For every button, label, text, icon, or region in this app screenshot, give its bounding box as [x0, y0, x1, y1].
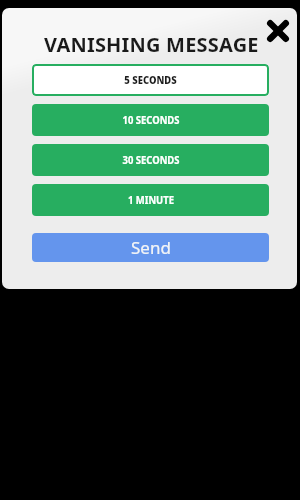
- staticText: VANISHING MESSAGE: [44, 31, 259, 58]
- staticText: 30 SECONDS: [122, 153, 180, 167]
- button[interactable]: 10 SECONDS: [32, 104, 269, 136]
- staticText: 10 SECONDS: [122, 113, 180, 127]
- staticText: 5 SECONDS: [124, 73, 177, 87]
- button[interactable]: Send: [32, 233, 269, 262]
- button[interactable]: Close: [262, 15, 294, 47]
- button[interactable]: 30 SECONDS: [32, 144, 269, 176]
- staticText: 1 MINUTE: [128, 193, 174, 207]
- staticText: Send: [131, 236, 171, 259]
- button[interactable]: 1 MINUTE: [32, 184, 269, 216]
- button[interactable]: 5 SECONDS: [32, 64, 269, 96]
